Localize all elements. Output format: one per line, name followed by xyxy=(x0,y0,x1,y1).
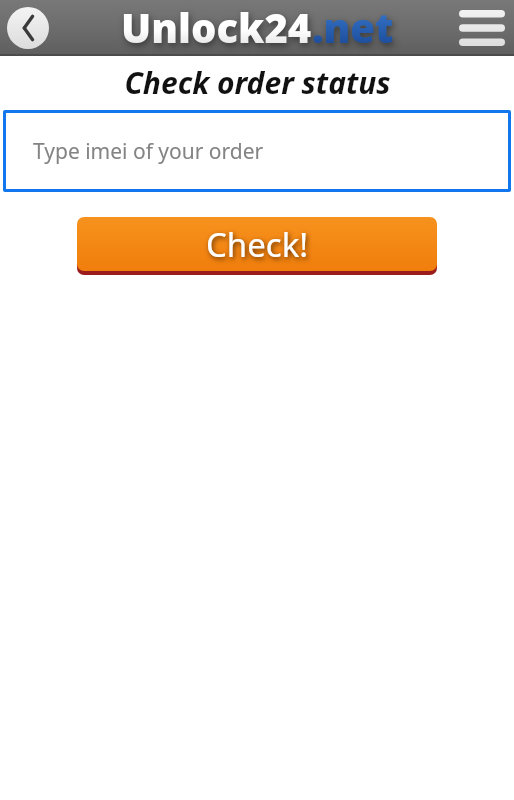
button[interactable]: Type imei of your order xyxy=(6,113,508,189)
button[interactable]: Back xyxy=(7,7,49,49)
staticText: .net xyxy=(312,0,394,54)
button[interactable]: Check! xyxy=(77,217,437,275)
button[interactable]: Menu xyxy=(456,2,508,54)
button[interactable]: Unlock24 xyxy=(121,0,394,54)
staticText: Check order status xyxy=(124,62,391,103)
staticText: Check! xyxy=(206,222,309,267)
staticText: Unlock24 xyxy=(121,0,312,54)
staticText: Type imei of your order xyxy=(33,137,264,166)
